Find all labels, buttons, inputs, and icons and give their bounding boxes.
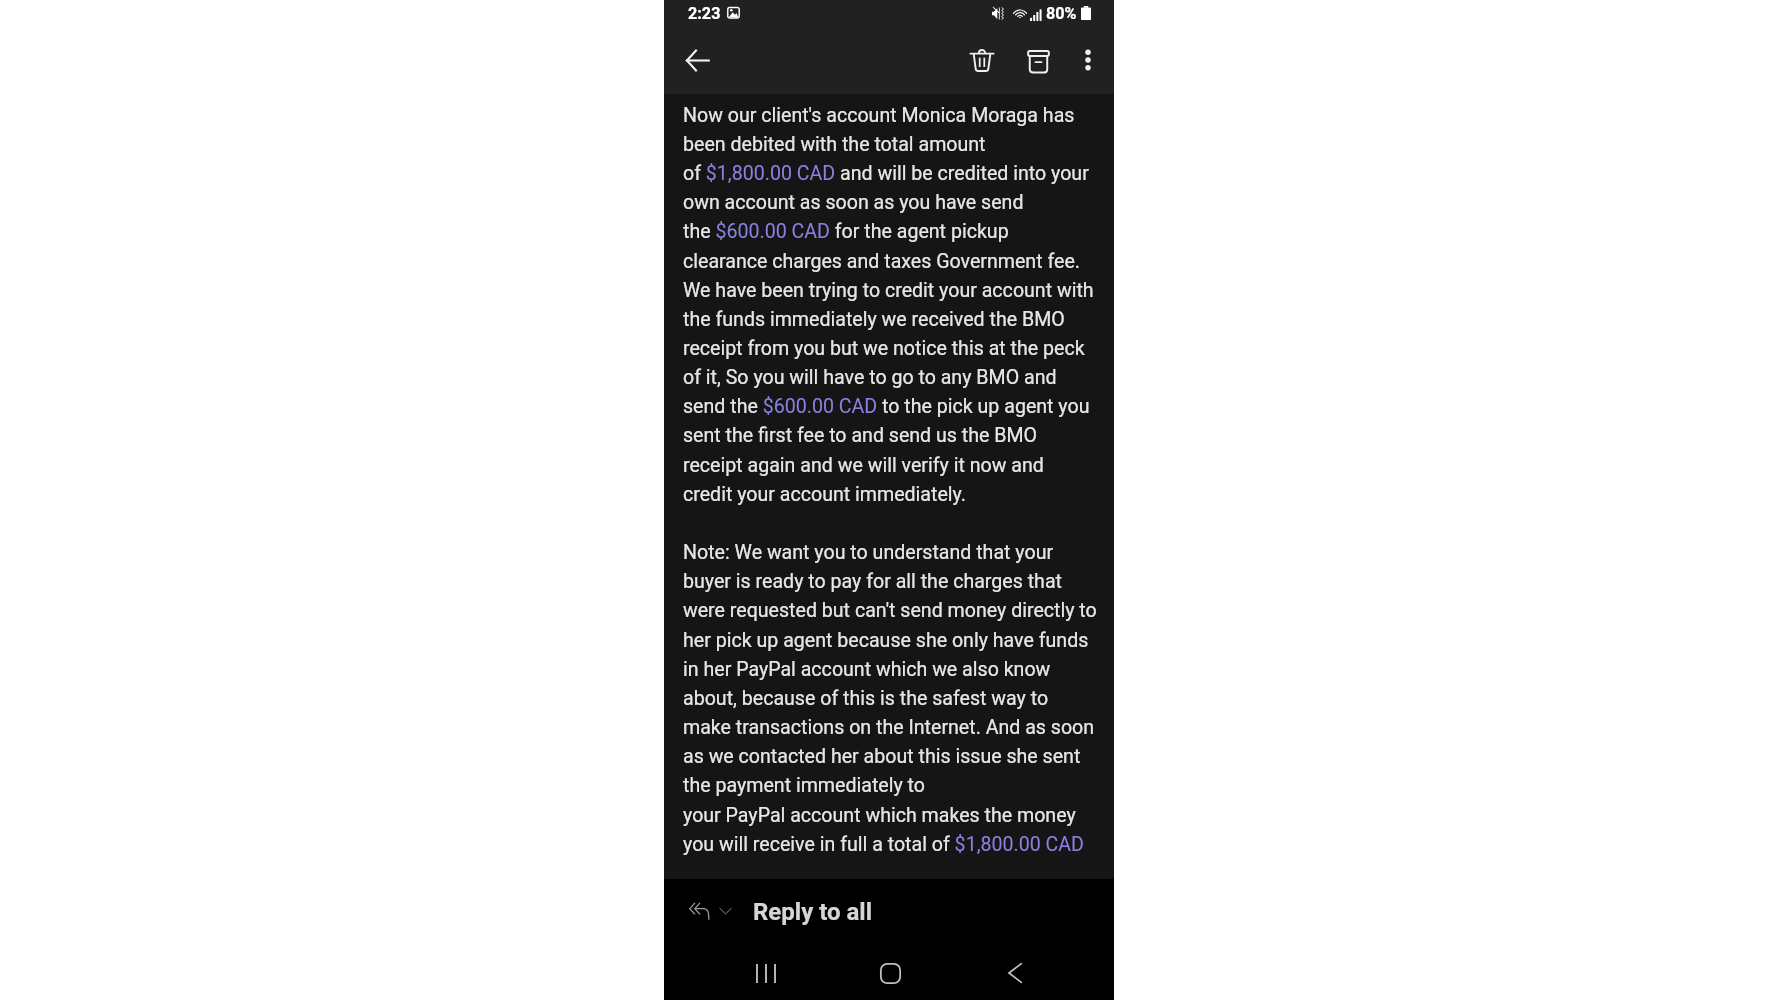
staticText: in her PayPal account which we also know xyxy=(683,658,1051,681)
button[interactable]: Now our client's account Monica Moraga h… xyxy=(664,94,1114,879)
staticText: make transactions on the Internet. And a… xyxy=(683,716,1095,739)
button[interactable]: Recent apps xyxy=(740,947,792,999)
staticText: Note: We want you to understand that you… xyxy=(683,541,1054,564)
staticText: were requested but can't send money dire… xyxy=(683,599,1097,622)
staticText: of it, So you will have to go to any BMO… xyxy=(683,366,1057,389)
staticText: 2:23 xyxy=(688,4,721,23)
staticText: Reply to all xyxy=(753,898,873,926)
staticText: buyer is ready to pay for all the charge… xyxy=(683,570,1062,593)
button[interactable]: Home xyxy=(864,947,916,999)
staticText: credit your account immediately. xyxy=(683,483,966,506)
staticText: own account as soon as you have send xyxy=(683,191,1024,214)
staticText: of $1,800.00 CAD and will be credited in… xyxy=(683,162,1089,185)
staticText: about, because of this is the safest way… xyxy=(683,687,1049,710)
staticText: We have been trying to credit your accou… xyxy=(683,279,1094,302)
staticText: Now our client's account Monica Moraga h… xyxy=(683,104,1075,127)
button[interactable]: Delete xyxy=(958,36,1006,84)
staticText: receipt again and we will verify it now … xyxy=(683,454,1044,477)
staticText: send the $600.00 CAD to the pick up agen… xyxy=(683,395,1090,418)
staticText: her pick up agent because she only have … xyxy=(683,629,1089,652)
staticText: sent the first fee to and send us the BM… xyxy=(683,424,1038,447)
staticText: 80% xyxy=(1046,4,1077,23)
button[interactable]: More options xyxy=(1064,36,1112,84)
staticText: receipt from you but we notice this at t… xyxy=(683,337,1085,360)
button[interactable]: Back xyxy=(673,36,721,84)
staticText: the payment immediately to xyxy=(683,774,925,797)
staticText: been debited with the total amount xyxy=(683,133,986,156)
button[interactable]: Archive xyxy=(1014,37,1062,85)
button[interactable]: Back xyxy=(989,947,1041,999)
staticText: you will receive in full a total of $1,8… xyxy=(683,833,1084,856)
staticText: as we contacted her about this issue she… xyxy=(683,745,1081,768)
staticText: clearance charges and taxes Government f… xyxy=(683,250,1080,273)
staticText: your PayPal account which makes the mone… xyxy=(683,804,1076,827)
staticText: the funds immediately we received the BM… xyxy=(683,308,1065,331)
staticText: the $600.00 CAD for the agent pickup xyxy=(683,220,1009,243)
button[interactable]: Reply to all xyxy=(664,879,1114,947)
